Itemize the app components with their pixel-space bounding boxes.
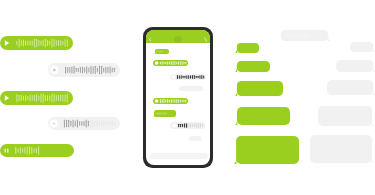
- button[interactable]: Message: [235, 81, 283, 96]
- button[interactable]: Voice message: [170, 122, 205, 129]
- button[interactable]: Play voice message: [0, 144, 74, 157]
- button[interactable]: Play voice message: [0, 91, 73, 105]
- button[interactable]: Voice message: [153, 98, 188, 104]
- button[interactable]: Voice message: [170, 74, 206, 80]
- button[interactable]: Play voice message: [0, 36, 73, 50]
- button[interactable]: Message: [153, 110, 176, 117]
- button[interactable]: Message: [235, 43, 259, 53]
- button[interactable]: Message: [235, 107, 290, 125]
- button[interactable]: Message: [336, 60, 375, 72]
- button[interactable]: Message: [281, 30, 330, 41]
- button[interactable]: Message: [234, 136, 299, 164]
- button[interactable]: Chat header: [146, 30, 210, 43]
- button[interactable]: Play voice message: [48, 117, 120, 130]
- button[interactable]: Message: [235, 61, 270, 72]
- button[interactable]: Message: [154, 49, 169, 54]
- button[interactable]: Voice message: [153, 60, 188, 66]
- button[interactable]: Message: [189, 136, 202, 141]
- button[interactable]: Message: [350, 42, 375, 52]
- button[interactable]: Play voice message: [48, 63, 120, 77]
- button[interactable]: Message: [327, 80, 375, 95]
